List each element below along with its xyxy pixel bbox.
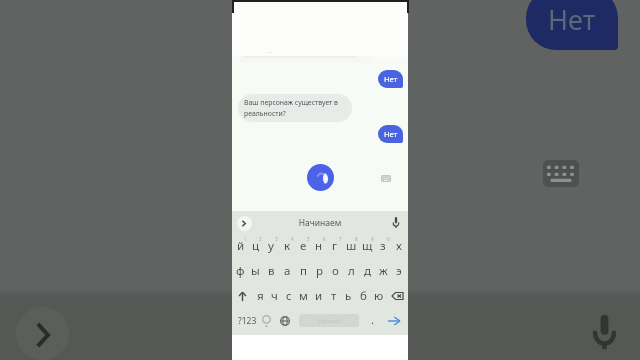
staticText: р (316, 263, 323, 279)
staticText: Русский (318, 317, 341, 325)
staticText: Ваш персонаж существует в реальности? (244, 98, 348, 118)
button[interactable]: Backspace (386, 284, 408, 308)
button[interactable]: я (253, 284, 267, 308)
button[interactable]: Change keyboard language (275, 310, 295, 332)
staticText: 8 (355, 236, 358, 242)
button[interactable]: Emoji (256, 310, 276, 332)
staticText: х (396, 238, 402, 254)
staticText: т (331, 288, 337, 304)
button[interactable]: . (364, 310, 380, 332)
staticText: 1 (244, 236, 247, 242)
staticText: а (284, 263, 291, 279)
staticText: г (332, 238, 338, 254)
staticText: ф (236, 263, 245, 279)
button[interactable]: Voice input (307, 164, 334, 191)
button[interactable]: Shift (232, 284, 253, 308)
button[interactable]: Expand suggestions (237, 216, 252, 231)
staticText: ь (345, 288, 352, 304)
staticText: л (348, 263, 355, 279)
staticText: б (360, 288, 367, 304)
button[interactable]: п (295, 259, 311, 283)
button[interactable]: о (327, 259, 343, 283)
button[interactable]: и (311, 284, 326, 308)
staticText: о (332, 263, 339, 279)
button[interactable]: б (356, 284, 371, 308)
button[interactable]: 6 (311, 232, 327, 256)
staticText: у (268, 238, 274, 254)
staticText: ч (271, 288, 278, 304)
button[interactable]: х (391, 232, 407, 256)
staticText: 9 (371, 236, 374, 242)
staticText: е (300, 238, 307, 254)
button[interactable]: ы (248, 259, 263, 283)
button[interactable]: э (391, 259, 407, 283)
button[interactable]: ь (341, 284, 356, 308)
button[interactable]: л (343, 259, 359, 283)
staticText: с (286, 288, 292, 304)
staticText: ш (346, 238, 357, 254)
staticText: ы (251, 263, 260, 279)
staticText: ю (374, 288, 384, 304)
button[interactable]: д (359, 259, 375, 283)
staticText: к (284, 238, 291, 254)
button[interactable]: а (279, 259, 295, 283)
button[interactable]: 3 (263, 232, 279, 256)
button[interactable]: с (281, 284, 296, 308)
staticText: Начинаем (232, 217, 408, 229)
button[interactable]: ж (375, 259, 391, 283)
staticText: 5 (307, 236, 310, 242)
staticText: 2 (259, 236, 262, 242)
button[interactable]: 1 (233, 232, 248, 256)
button[interactable]: Нет (378, 125, 403, 143)
button[interactable]: ф (233, 259, 248, 283)
staticText: м (299, 288, 308, 304)
staticText: 7 (339, 236, 342, 242)
button[interactable]: Send (384, 310, 404, 332)
button[interactable]: т (326, 284, 341, 308)
staticText: э (396, 263, 402, 279)
staticText: 6 (323, 236, 326, 242)
staticText: ?123 (238, 315, 257, 327)
button[interactable]: 8 (343, 232, 359, 256)
button[interactable]: Ваш персонаж существует в реальности? (238, 94, 352, 122)
button[interactable]: 7 (327, 232, 343, 256)
staticText: и (315, 288, 323, 304)
staticText: ц (252, 238, 260, 254)
staticText: Нет (384, 74, 398, 84)
button[interactable]: ч (267, 284, 281, 308)
button[interactable]: 2 (248, 232, 263, 256)
staticText: ж (379, 263, 388, 279)
button[interactable]: Нет (378, 70, 403, 88)
staticText: 0 (387, 236, 390, 242)
button[interactable]: 9 (359, 232, 375, 256)
staticText: з (380, 238, 386, 254)
staticText: Нет (384, 129, 398, 139)
button[interactable]: ?123 (234, 310, 260, 332)
staticText: н (315, 238, 323, 254)
button[interactable]: в (263, 259, 279, 283)
staticText: д (364, 263, 371, 279)
staticText: п (300, 263, 307, 279)
staticText: щ (362, 238, 373, 254)
button[interactable]: ю (371, 284, 386, 308)
button[interactable]: м (296, 284, 311, 308)
button[interactable]: 5 (295, 232, 311, 256)
staticText: в (268, 263, 275, 279)
staticText: 3 (275, 236, 278, 242)
button[interactable]: р (311, 259, 327, 283)
staticText: 4 (291, 236, 294, 242)
staticText: й (237, 238, 245, 254)
staticText: . (371, 312, 374, 327)
staticText: я (257, 288, 264, 304)
staticText: Нет (548, 1, 596, 38)
button[interactable]: 0 (375, 232, 391, 256)
button[interactable]: 4 (279, 232, 295, 256)
